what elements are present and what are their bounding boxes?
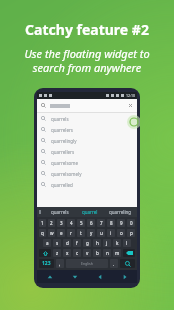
button[interactable]: c — [73, 249, 81, 257]
button[interactable]: 0 — [127, 219, 135, 227]
staticText: 3 — [60, 220, 63, 226]
staticText: x — [66, 250, 69, 256]
button[interactable]: o — [117, 229, 125, 237]
button[interactable]: q — [39, 229, 46, 237]
staticText: y — [90, 230, 93, 236]
staticText: u — [100, 230, 103, 236]
button[interactable]: Shift — [39, 249, 51, 257]
staticText: j — [106, 240, 108, 246]
staticText: 8 — [110, 220, 113, 226]
staticText: o — [120, 230, 123, 236]
button[interactable]: quarrel — [75, 207, 105, 217]
button[interactable]: quarrelsome — [37, 157, 137, 168]
staticText: e — [60, 230, 63, 236]
staticText: quarrelers — [51, 127, 73, 133]
button[interactable]: Left — [87, 270, 112, 283]
button[interactable]: v — [83, 249, 91, 257]
staticText: quarrelingly — [51, 138, 77, 144]
button[interactable]: quarrels — [44, 207, 75, 217]
staticText: quarrelled — [51, 182, 73, 188]
button[interactable]: i — [107, 229, 115, 237]
button[interactable]: . — [110, 259, 118, 268]
button[interactable]: p — [127, 229, 135, 237]
staticText: quarrelsome — [51, 160, 79, 166]
staticText: k — [116, 240, 119, 246]
button[interactable]: h — [93, 239, 101, 247]
button[interactable]: w — [48, 229, 55, 237]
staticText: d — [66, 240, 69, 246]
staticText: l — [126, 240, 128, 246]
button[interactable]: 9 — [117, 219, 125, 227]
button[interactable]: u — [97, 229, 105, 237]
button[interactable]: l — [123, 239, 131, 247]
button[interactable]: g — [83, 239, 91, 247]
staticText: p — [130, 230, 133, 236]
button[interactable]: Floating search widget — [127, 115, 140, 129]
staticText: v — [86, 250, 89, 256]
button[interactable]: f — [73, 239, 81, 247]
button[interactable]: quarrelled — [37, 179, 137, 190]
button[interactable]: 8 — [107, 219, 115, 227]
button[interactable]: Up — [37, 270, 62, 283]
button[interactable]: b — [93, 249, 101, 257]
button[interactable]: 2 — [48, 219, 55, 227]
button[interactable]: Search — [120, 259, 135, 268]
button[interactable]: 7 — [97, 219, 105, 227]
staticText: 5 — [80, 220, 83, 226]
staticText: quarrels — [51, 116, 69, 122]
staticText: English — [81, 261, 93, 266]
button[interactable]: Space — [66, 259, 108, 268]
button[interactable]: y — [87, 229, 95, 237]
button[interactable]: t — [77, 229, 85, 237]
button[interactable]: 1 — [39, 219, 46, 227]
staticText: a — [46, 240, 49, 246]
staticText: quarrelsomely — [51, 171, 82, 177]
staticText: 1 — [41, 220, 44, 226]
staticText: 4 — [70, 220, 73, 226]
button[interactable]: s — [53, 239, 61, 247]
button[interactable]: z — [53, 249, 61, 257]
staticText: b — [96, 250, 99, 256]
button[interactable]: m — [113, 249, 121, 257]
button[interactable]: quarrelingly — [37, 135, 137, 146]
button[interactable]: 5 — [77, 219, 85, 227]
staticText: m — [115, 250, 120, 256]
button[interactable]: quarrelsomely — [37, 168, 137, 179]
staticText: z — [56, 250, 59, 256]
button[interactable]: 6 — [87, 219, 95, 227]
button[interactable]: d — [63, 239, 71, 247]
button[interactable]: a — [43, 239, 51, 247]
button[interactable]: k — [113, 239, 121, 247]
staticText: 0 — [130, 220, 133, 226]
staticText: w — [50, 230, 54, 236]
button[interactable]: Backspace — [123, 249, 135, 257]
button[interactable]: , — [56, 259, 64, 268]
button[interactable]: quarrelers — [37, 124, 137, 135]
staticText: f — [76, 240, 78, 246]
staticText: c — [76, 250, 79, 256]
button[interactable]: Right — [112, 270, 137, 283]
button[interactable]: quarreling — [105, 207, 135, 217]
button[interactable]: e — [57, 229, 65, 237]
staticText: g — [86, 240, 89, 246]
button[interactable]: quarrellers — [37, 146, 137, 157]
button[interactable]: Clear — [37, 99, 137, 112]
button[interactable]: 123 — [39, 259, 54, 268]
button[interactable]: r — [67, 229, 75, 237]
staticText: quarreling — [109, 209, 132, 215]
staticText: n — [106, 250, 109, 256]
staticText: quarrellers — [51, 149, 75, 155]
other: Clear — [128, 103, 133, 108]
button[interactable]: Down — [62, 270, 87, 283]
staticText: . — [113, 261, 115, 267]
staticText: r — [70, 230, 72, 236]
button[interactable]: 4 — [67, 219, 75, 227]
button[interactable]: quarrels — [37, 113, 137, 124]
button[interactable]: 3 — [57, 219, 65, 227]
button[interactable]: n — [103, 249, 111, 257]
staticText: Catchy feature #2 — [25, 20, 149, 39]
button[interactable]: j — [103, 239, 111, 247]
staticText: quarrels — [51, 209, 69, 215]
button[interactable]: x — [63, 249, 71, 257]
staticText: quarrel — [82, 209, 98, 215]
